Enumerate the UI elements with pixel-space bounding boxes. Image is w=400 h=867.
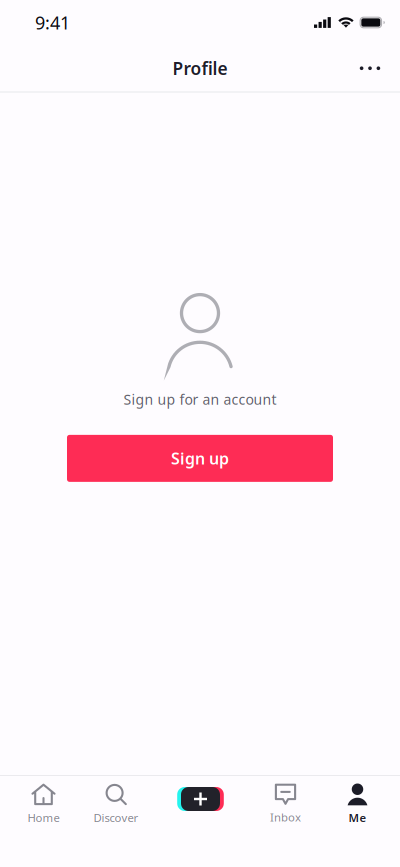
button[interactable]: Create [145,776,256,867]
button[interactable]: Me [315,776,400,867]
staticText: Profile [172,56,227,80]
button[interactable]: Inbox [256,776,315,867]
button[interactable]: Sign up [67,435,333,482]
staticText: 9:41 [35,10,70,35]
staticText: Home [27,810,59,825]
staticText: Discover [93,810,138,825]
button[interactable]: Home [0,776,87,867]
staticText: Sign up for an account [123,390,276,409]
staticText: Me [348,810,366,825]
staticText: Inbox [270,809,301,825]
button[interactable]: More options [348,46,392,90]
button[interactable]: Discover [87,776,145,867]
staticText: Sign up [171,447,229,469]
